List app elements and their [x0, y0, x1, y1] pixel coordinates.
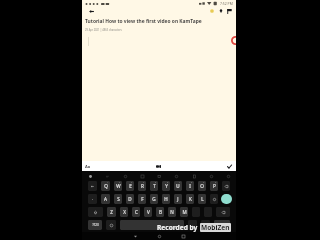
button[interactable]: bs: [216, 207, 230, 217]
button[interactable]: S: [114, 194, 122, 204]
staticText: J: [177, 196, 179, 202]
button[interactable]: I: [186, 181, 194, 191]
button[interactable]: H: [162, 194, 170, 204]
staticText: L: [201, 196, 204, 202]
staticText: Recorded by: [157, 223, 198, 232]
button[interactable]: P: [210, 181, 218, 191]
button[interactable]: F: [138, 194, 146, 204]
staticText: Z: [110, 209, 113, 215]
staticText: 4: [143, 181, 145, 184]
button[interactable]: A: [101, 194, 110, 204]
button[interactable]: Insert image: [154, 162, 163, 171]
button[interactable]: dot: [88, 194, 97, 204]
button[interactable]: X: [120, 207, 128, 217]
staticText: E: [129, 183, 132, 189]
button[interactable]: L: [198, 194, 206, 204]
button[interactable]: N: [168, 207, 176, 217]
button[interactable]: Keyboard tool 8: [225, 173, 232, 180]
staticText: 7: [179, 181, 181, 184]
staticText: ?123: [92, 223, 99, 227]
staticText: MobiZen: [201, 223, 230, 232]
button[interactable]: shift: [88, 207, 103, 217]
button[interactable]: V: [144, 207, 152, 217]
button[interactable]: O: [198, 181, 206, 191]
button[interactable]: comma: [188, 220, 197, 230]
button[interactable]: tab: [88, 181, 97, 191]
staticText: I: [189, 183, 191, 189]
staticText: H: [164, 196, 168, 202]
button[interactable]: Keyboard tool 3: [139, 173, 146, 180]
staticText: W: [116, 183, 121, 189]
button[interactable]: emoji: [106, 220, 116, 230]
button[interactable]: bs: [222, 181, 230, 191]
button[interactable]: Back: [87, 7, 96, 15]
staticText: S: [117, 196, 120, 202]
button[interactable]: Keyboard tool 1: [104, 173, 111, 180]
staticText: Aa: [85, 164, 91, 169]
button[interactable]: Keyboard tool 7: [208, 173, 215, 180]
staticText: F: [141, 196, 144, 202]
staticText: 6: [167, 181, 169, 184]
staticText: R: [141, 183, 144, 189]
staticText: 29 Apr 2021 | 4865 characters: [85, 28, 122, 32]
staticText: T: [153, 183, 156, 189]
button[interactable]: Keyboard tool 4: [156, 173, 163, 180]
button[interactable]: Keyboard tool 2: [122, 173, 129, 180]
button[interactable]: Z: [107, 207, 116, 217]
staticText: N: [170, 209, 174, 215]
staticText: O: [200, 183, 204, 189]
button[interactable]: at: [210, 194, 218, 204]
button[interactable]: [120, 220, 184, 230]
button[interactable]: Enter: [221, 194, 232, 204]
button[interactable]: Hub: [214, 220, 230, 230]
staticText: 5: [155, 181, 157, 184]
button[interactable]: Highlight: [207, 7, 216, 15]
staticText: 3: [131, 181, 133, 184]
button[interactable]: ?123: [88, 220, 102, 230]
staticText: K: [189, 196, 192, 202]
button[interactable]: T: [150, 181, 158, 191]
button[interactable]: More options: [225, 7, 234, 15]
button[interactable]: Y: [162, 181, 170, 191]
button[interactable]: D: [126, 194, 134, 204]
staticText: 0: [215, 181, 217, 184]
button[interactable]: C: [132, 207, 140, 217]
staticText: A: [104, 196, 107, 202]
button[interactable]: B: [156, 207, 164, 217]
button[interactable]: Done: [225, 162, 234, 171]
button[interactable]: Pin note: [216, 7, 225, 15]
staticText: B: [159, 209, 162, 215]
button[interactable]: Home: [156, 233, 163, 240]
button[interactable]: period: [201, 220, 210, 230]
button[interactable]: E: [126, 181, 134, 191]
button[interactable]: K: [186, 194, 194, 204]
button[interactable]: Keyboard tool 5: [173, 173, 180, 180]
staticText: P: [213, 183, 216, 189]
staticText: 9: [203, 181, 205, 184]
button[interactable]: G: [150, 194, 158, 204]
staticText: C: [135, 209, 138, 215]
button[interactable]: R: [138, 181, 146, 191]
staticText: 7:52 PM: [220, 1, 233, 6]
button[interactable]: Keyboard tool 6: [191, 173, 198, 180]
staticText: G: [152, 196, 156, 202]
button[interactable]: J: [174, 194, 182, 204]
button[interactable]: Back: [132, 233, 139, 240]
staticText: X: [123, 209, 126, 215]
button[interactable]: M: [180, 207, 188, 217]
button[interactable]: Recent apps: [180, 233, 187, 240]
staticText: 1: [107, 181, 109, 184]
staticText: Q: [104, 183, 108, 189]
staticText: Tutorial How to view the first video on …: [85, 18, 202, 25]
button[interactable]: Keyboard tool 0: [87, 173, 94, 180]
button[interactable]: Q: [101, 181, 110, 191]
staticText: 8: [191, 181, 193, 184]
button[interactable]: U: [174, 181, 182, 191]
staticText: 2: [119, 181, 121, 184]
staticText: V: [147, 209, 150, 215]
staticText: U: [176, 183, 180, 189]
button[interactable]: W: [114, 181, 122, 191]
button[interactable]: Text style: [83, 162, 92, 171]
